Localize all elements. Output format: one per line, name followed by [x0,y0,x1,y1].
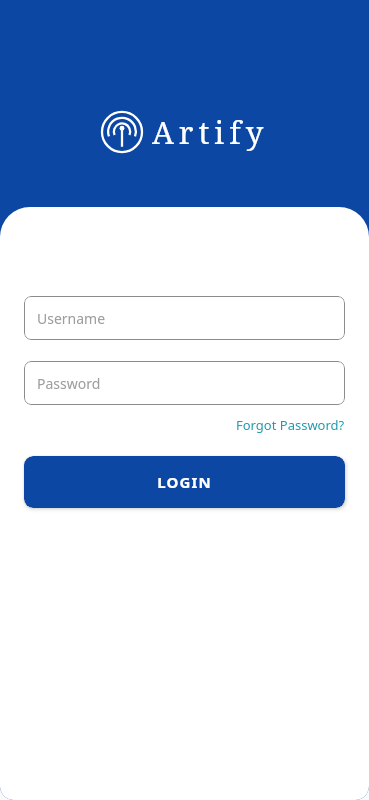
staticText: LOGIN [157,472,212,492]
staticText: Artify [152,111,269,153]
button[interactable]: LOGIN [24,456,345,508]
staticText: Forgot Password? [236,416,345,434]
button[interactable]: Password [24,361,345,405]
other: Artify logo [100,110,144,154]
button[interactable]: Forgot Password? [236,414,345,436]
staticText: Password [37,374,101,393]
staticText: Username [37,309,106,328]
button[interactable]: Username [24,296,345,340]
